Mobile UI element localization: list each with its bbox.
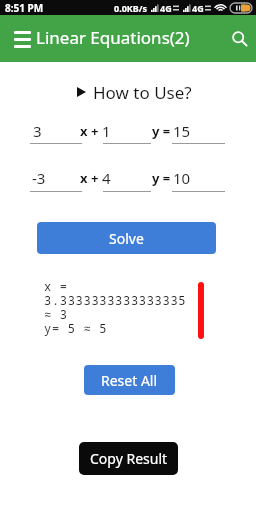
staticText: x +: [80, 169, 102, 187]
staticText: -3: [32, 168, 46, 188]
button[interactable]: Copy Result: [79, 442, 178, 475]
button[interactable]: [172, 170, 225, 192]
button[interactable]: How to Use?: [77, 80, 192, 104]
button[interactable]: [103, 170, 151, 192]
staticText: y =: [152, 169, 174, 187]
staticText: 8:51 PM: [5, 1, 44, 15]
button[interactable]: [30, 170, 82, 192]
staticText: Reset All: [101, 371, 158, 390]
staticText: y =: [152, 122, 174, 140]
staticText: Copy Result: [90, 449, 168, 468]
button[interactable]: Reset All: [84, 365, 175, 395]
staticText: Solve: [109, 229, 144, 248]
button[interactable]: [227, 26, 253, 52]
staticText: 15: [173, 121, 191, 141]
button[interactable]: [103, 122, 151, 144]
staticText: x = 3.3333333333333335 ≈ 3 y= 5 ≈ 5: [44, 278, 187, 337]
staticText: 3: [33, 121, 42, 141]
staticText: 4G: [160, 2, 172, 14]
staticText: 4: [102, 168, 111, 188]
staticText: 4G: [192, 2, 204, 14]
button[interactable]: [172, 122, 225, 144]
staticText: x +: [80, 122, 102, 140]
staticText: 10: [173, 168, 191, 188]
staticText: Linear Equations(2): [36, 26, 190, 49]
button[interactable]: [7, 24, 37, 54]
staticText: How to Use?: [93, 81, 192, 104]
staticText: 0.0KB/s: [114, 2, 148, 14]
staticText: 1: [102, 121, 111, 141]
button[interactable]: Solve: [37, 222, 216, 254]
button[interactable]: [30, 122, 82, 144]
